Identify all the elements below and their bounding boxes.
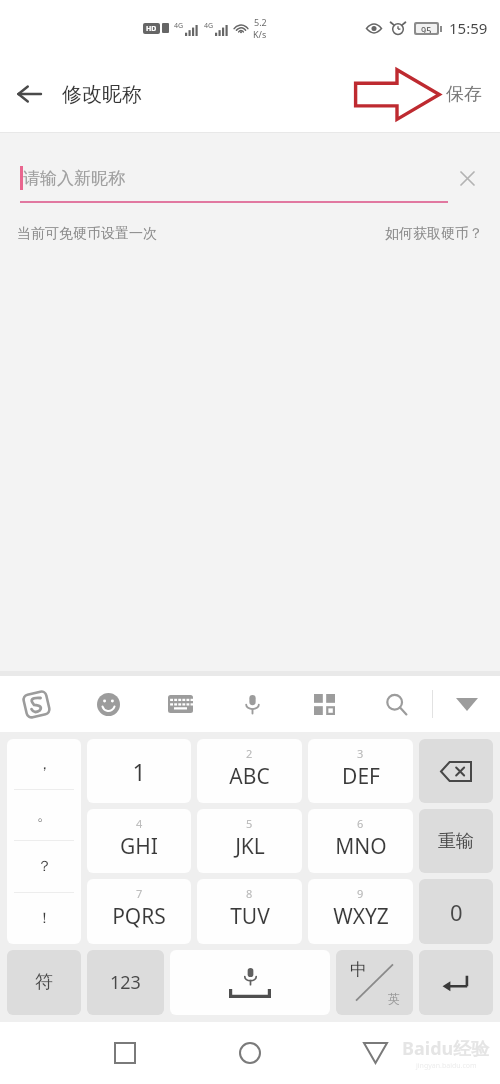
button[interactable]: Search (360, 676, 432, 732)
staticText: 4G (174, 21, 184, 31)
staticText: 请输入新昵称 (23, 168, 125, 189)
staticText: 123 (110, 970, 141, 995)
button[interactable]: 6 (308, 809, 413, 873)
button[interactable]: Recent apps (97, 1025, 153, 1081)
button[interactable]: Switch Chinese English (336, 950, 413, 1015)
button[interactable]: 8 (197, 879, 302, 944)
button[interactable]: Emoji (72, 676, 144, 732)
button[interactable]: Sogou input method (0, 676, 72, 732)
button[interactable]: 如何获取硬币？ (385, 225, 483, 243)
button[interactable]: ！ (7, 893, 81, 944)
staticText: 重输 (438, 830, 474, 853)
staticText: 0 (450, 897, 463, 927)
staticText: K/s (253, 28, 267, 40)
staticText: DEF (342, 762, 380, 791)
staticText: WXYZ (333, 902, 389, 931)
staticText: 95 (421, 24, 432, 33)
staticText: GHI (120, 832, 158, 861)
staticText: ！ (37, 909, 52, 928)
button[interactable]: Voice input (216, 676, 288, 732)
staticText: 9 (357, 886, 364, 901)
staticText: 如何获取硬币？ (385, 225, 483, 243)
staticText: 中 (350, 959, 367, 980)
button[interactable]: 5 (197, 809, 302, 873)
button[interactable]: 4 (87, 809, 191, 873)
staticText: 2 (246, 746, 253, 761)
staticText: 当前可免硬币设置一次 (17, 225, 157, 243)
staticText: ？ (37, 857, 52, 876)
staticText: 3 (357, 746, 364, 761)
staticText: HD (146, 24, 157, 34)
staticText: 。 (37, 806, 52, 825)
staticText: 8 (246, 886, 253, 901)
staticText: Baidu经验 (402, 1036, 490, 1061)
staticText: TUV (230, 902, 270, 931)
staticText: jingyan.baidu.com (416, 1061, 477, 1071)
staticText: 5 (246, 816, 253, 831)
staticText: ABC (229, 762, 270, 791)
button[interactable]: 0 (419, 879, 493, 944)
staticText: 4 (136, 816, 143, 831)
staticText: 英 (388, 991, 400, 1006)
button[interactable]: Back (0, 65, 58, 123)
button[interactable]: 9 (308, 879, 413, 944)
button[interactable]: 7 (87, 879, 191, 944)
staticText: 符 (35, 971, 53, 994)
button[interactable]: Enter (419, 950, 493, 1015)
button[interactable]: 请输入新昵称 (20, 155, 480, 201)
button[interactable]: 保存 (446, 83, 482, 106)
button[interactable]: 符 (7, 950, 81, 1015)
staticText: 4G (204, 21, 214, 31)
button[interactable]: Hide keyboard (433, 676, 500, 732)
staticText: PQRS (112, 902, 166, 931)
button[interactable]: ？ (7, 841, 81, 892)
button[interactable]: Backspace (419, 739, 493, 803)
staticText: 7 (136, 886, 143, 901)
button[interactable]: Space (170, 950, 330, 1015)
button[interactable]: Back (347, 1025, 403, 1081)
staticText: 修改昵称 (62, 82, 142, 107)
button[interactable]: Keyboard layout (144, 676, 216, 732)
button[interactable]: Home (222, 1025, 278, 1081)
button[interactable]: 123 (87, 950, 164, 1015)
staticText: MNO (335, 832, 387, 861)
staticText: JKL (235, 832, 265, 861)
staticText: 5.2 (254, 16, 267, 28)
button[interactable]: ， (7, 739, 81, 789)
staticText: 1 (132, 756, 146, 787)
button[interactable]: Clear text (454, 165, 480, 191)
button[interactable]: 。 (7, 790, 81, 840)
staticText: 保存 (446, 83, 482, 106)
button[interactable]: 重输 (419, 809, 493, 873)
button[interactable]: 2 (197, 739, 302, 803)
staticText: ， (37, 755, 52, 774)
staticText: 15:59 (449, 18, 488, 38)
button[interactable]: More panels (288, 676, 360, 732)
button[interactable]: 3 (308, 739, 413, 803)
button[interactable]: 1 (87, 739, 191, 803)
staticText: 6 (357, 816, 364, 831)
